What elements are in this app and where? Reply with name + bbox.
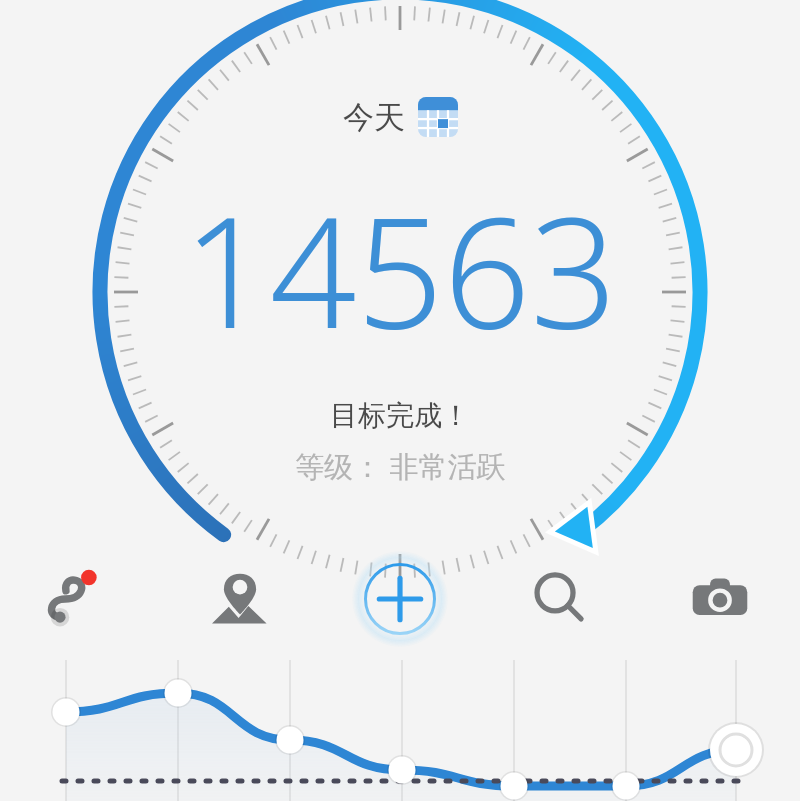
button[interactable]: Add bbox=[320, 549, 480, 649]
staticText: 今天 bbox=[343, 98, 405, 137]
staticText: 目标完成！ bbox=[330, 398, 470, 433]
button[interactable]: Search bbox=[480, 549, 640, 649]
button[interactable]: Places bbox=[160, 549, 320, 649]
button[interactable] bbox=[0, 660, 800, 801]
button[interactable]: Camera bbox=[640, 549, 800, 649]
button[interactable]: Activity bbox=[0, 549, 160, 649]
button[interactable]: 今天 bbox=[343, 97, 458, 137]
staticText: 14563 bbox=[0, 166, 800, 373]
staticText: 等级： 非常活跃 bbox=[295, 446, 506, 486]
